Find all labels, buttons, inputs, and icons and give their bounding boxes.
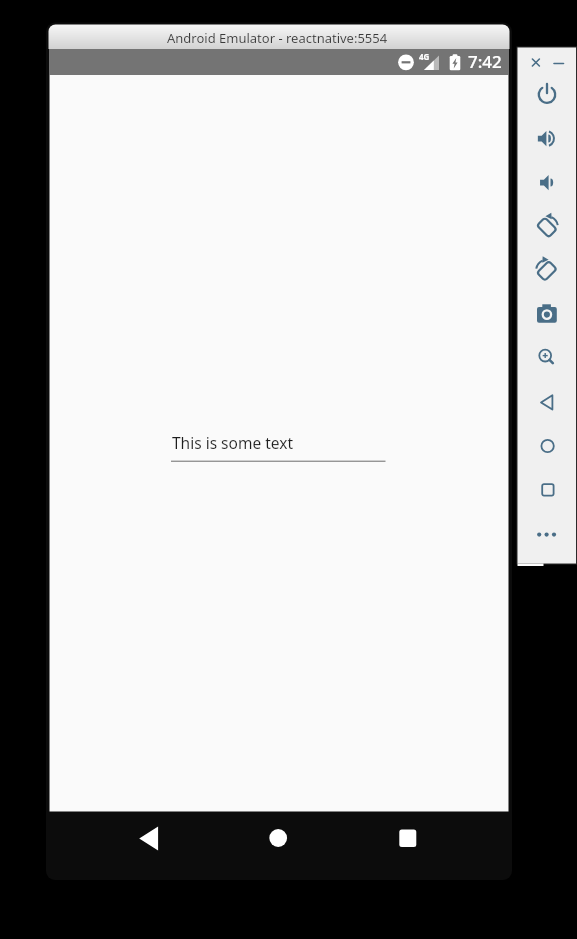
button[interactable] — [532, 386, 562, 416]
button[interactable] — [532, 79, 562, 109]
button[interactable]: This is some text — [171, 430, 385, 462]
staticText: 4G — [419, 51, 430, 62]
button[interactable] — [532, 518, 562, 548]
button[interactable] — [532, 474, 562, 504]
button[interactable] — [532, 299, 562, 329]
staticText: This is some text — [172, 432, 293, 453]
button[interactable] — [532, 123, 562, 153]
button[interactable] — [532, 342, 562, 372]
button[interactable] — [532, 211, 562, 241]
staticText: 7:42 — [468, 50, 502, 73]
button[interactable] — [262, 822, 294, 854]
button[interactable] — [532, 430, 562, 460]
staticText: Android Emulator - reactnative:5554 — [167, 29, 388, 47]
button[interactable] — [549, 54, 567, 72]
button[interactable] — [526, 54, 544, 72]
button[interactable] — [532, 255, 562, 285]
button[interactable] — [532, 167, 562, 197]
button[interactable] — [133, 822, 165, 854]
button[interactable] — [392, 822, 424, 854]
